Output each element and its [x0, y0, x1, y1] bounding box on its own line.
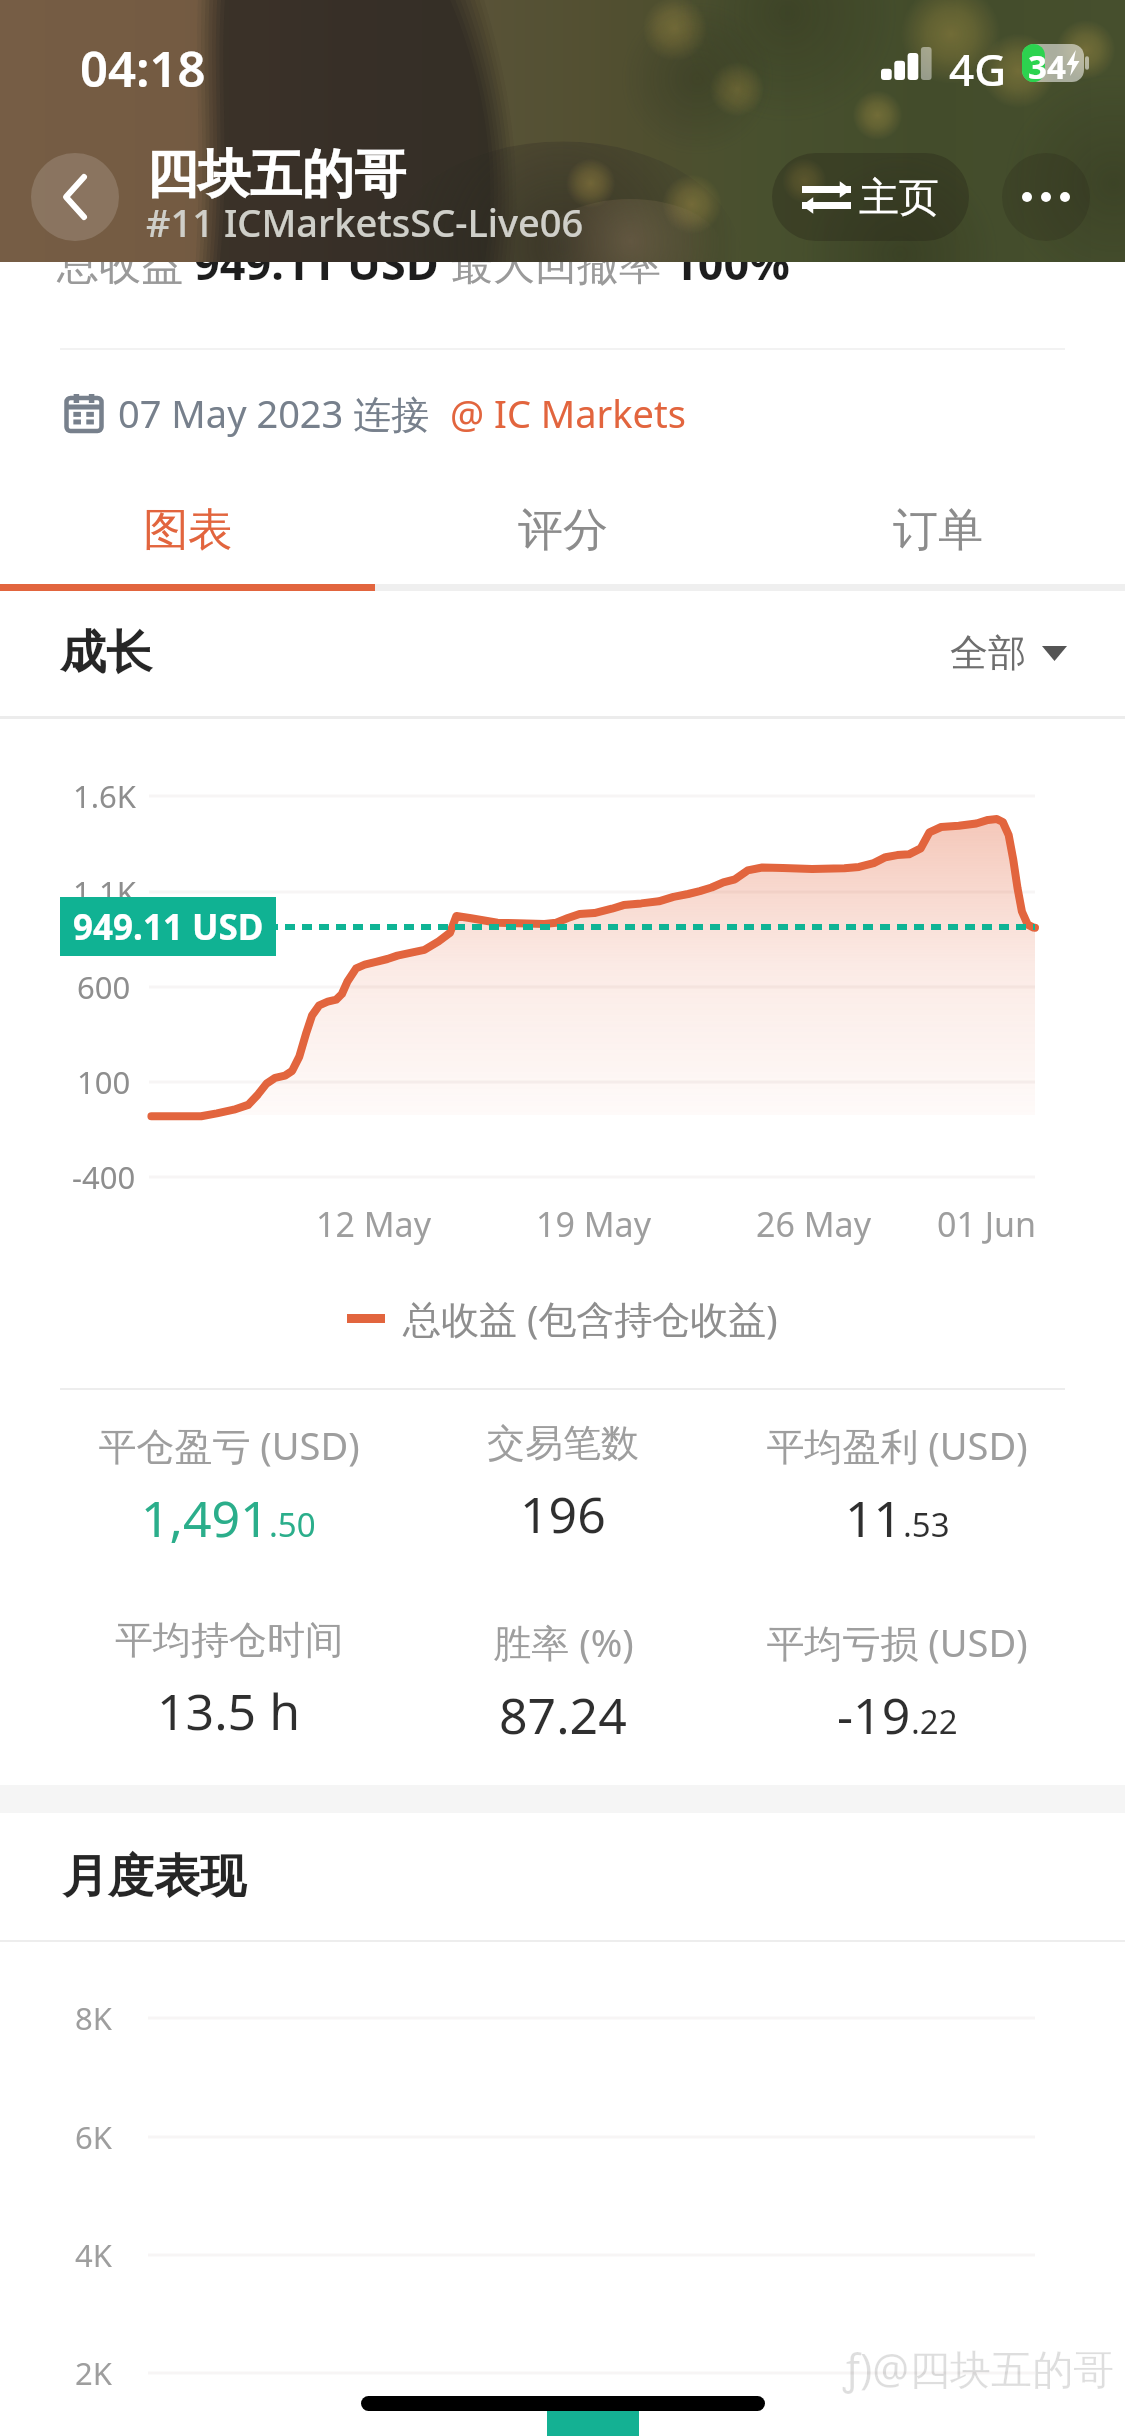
staticText: 8K — [75, 1997, 112, 2039]
staticText: @ IC Markets — [450, 387, 686, 439]
staticText: 11 — [845, 1484, 903, 1552]
staticText: .53 — [903, 1502, 950, 1547]
staticText: 100 — [77, 1061, 131, 1103]
staticText: 34 — [1028, 44, 1066, 82]
staticText: 600 — [77, 966, 131, 1008]
staticText: 4K — [75, 2234, 112, 2276]
button[interactable]: 主页 — [772, 153, 969, 241]
staticText: 1.1K — [73, 871, 136, 913]
button[interactable]: 图表 — [0, 476, 375, 584]
staticText: 87.24 — [499, 1681, 627, 1749]
button[interactable]: @ IC Markets — [450, 387, 686, 439]
staticText: 平均亏损 (USD) — [766, 1616, 1028, 1668]
staticText: 04:18 — [80, 35, 206, 102]
staticText: 最大回撤率 — [451, 234, 672, 291]
staticText: 949.11 USD — [73, 903, 264, 951]
staticText: 01 Jun — [937, 1201, 1037, 1247]
staticText: ƒ)@四块五的哥 — [843, 2340, 1115, 2396]
staticText: 总收益 — [57, 234, 194, 291]
button[interactable]: Back — [31, 153, 119, 241]
staticText: 07 May 2023 连接 — [118, 387, 430, 439]
staticText: 全部 — [950, 629, 1026, 677]
staticText: 成长 — [60, 624, 152, 682]
staticText: 196 — [520, 1480, 606, 1548]
staticText: 6K — [75, 2116, 112, 2158]
staticText: 胜率 (%) — [493, 1616, 634, 1668]
staticText: 四块五的哥 — [146, 142, 406, 208]
staticText: 4G — [949, 39, 1007, 87]
staticText: 订单 — [893, 502, 983, 559]
staticText: 评分 — [518, 502, 608, 559]
staticText: 平均盈利 (USD) — [766, 1419, 1028, 1471]
staticText: 交易笔数 — [487, 1419, 639, 1467]
button[interactable]: 全部 — [950, 629, 1067, 677]
button[interactable]: More options — [1002, 153, 1090, 241]
staticText: 主页 — [859, 172, 939, 222]
staticText: #11 ICMarketsSC-Live06 — [146, 196, 584, 248]
staticText: 100% — [672, 232, 790, 292]
staticText: 13.5 h — [157, 1677, 301, 1745]
staticText: 2K — [75, 2352, 112, 2394]
staticText: 图表 — [143, 502, 233, 559]
staticText: 总收益 (包含持仓收益) — [403, 1292, 778, 1344]
staticText: .50 — [269, 1502, 316, 1547]
button[interactable]: 订单 — [750, 476, 1125, 584]
staticText: .22 — [911, 1699, 958, 1744]
staticText: 19 May — [536, 1201, 651, 1247]
staticText: 12 May — [316, 1201, 431, 1247]
staticText: 1,491 — [141, 1484, 269, 1552]
staticText: 1.6K — [73, 775, 136, 817]
staticText: 月度表现 — [62, 1848, 246, 1906]
staticText: -19 — [837, 1681, 911, 1749]
staticText: 26 May — [756, 1201, 871, 1247]
staticText: 平仓盈亏 (USD) — [98, 1419, 360, 1471]
button[interactable]: 评分 — [375, 476, 750, 584]
staticText: -400 — [72, 1156, 136, 1198]
staticText: 平均持仓时间 — [115, 1616, 343, 1664]
staticText: 949.11 USD — [194, 232, 451, 292]
